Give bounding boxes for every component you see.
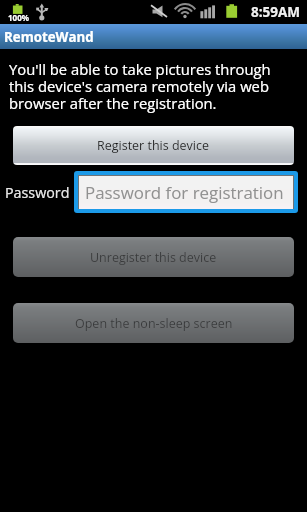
staticText: Unregister this device <box>90 249 217 266</box>
staticText: Register this device <box>97 137 210 154</box>
staticText: 8:59AM <box>251 3 301 21</box>
button[interactable]: Password for registration <box>79 176 293 209</box>
button[interactable]: Register this device <box>13 126 294 165</box>
staticText: Open the non-sleep screen <box>75 315 233 332</box>
staticText: 100% <box>8 12 29 23</box>
button[interactable]: Open the non-sleep screen <box>13 303 294 343</box>
staticText: Password <box>5 183 70 202</box>
staticText: You'll be able to take pictures through … <box>9 59 299 114</box>
button[interactable]: Unregister this device <box>13 237 294 277</box>
staticText: Password for registration <box>85 181 284 204</box>
staticText: RemoteWand <box>4 28 94 46</box>
